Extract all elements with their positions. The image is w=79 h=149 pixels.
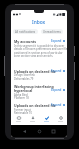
staticText: Workgroup interfacing (14, 84, 54, 89)
staticText: Platform 18 (14, 96, 29, 100)
button[interactable]: Alerts (39, 113, 53, 125)
staticText: Uploads on declared file (14, 103, 56, 108)
button[interactable]: My accounts (11, 38, 67, 60)
staticText: Expand (51, 69, 62, 73)
button[interactable]: Expand (51, 39, 65, 43)
staticText: Inbox (32, 19, 46, 26)
other: Home (38, 130, 41, 133)
staticText: Design Storefink (14, 73, 35, 77)
button[interactable]: Expand (51, 88, 65, 92)
staticText: All notifications (15, 30, 36, 34)
button[interactable]: People (25, 113, 39, 125)
staticText: positioned in section area of particular (14, 51, 63, 55)
button[interactable]: Inbox (11, 18, 67, 27)
button[interactable]: Home (11, 113, 25, 125)
staticText: Unread items (43, 30, 61, 34)
other: Back (23, 130, 26, 133)
staticText: My accounts (14, 39, 36, 44)
staticText: Deliverables 79 (14, 77, 34, 81)
button[interactable]: Uploads on declared file (11, 68, 67, 82)
button[interactable]: Expand (51, 103, 65, 107)
button[interactable]: All notifications (13, 29, 38, 34)
button[interactable]: Workgroup interfacing (11, 84, 67, 102)
button[interactable]: Settings (53, 113, 67, 125)
staticText: zone section view and services. (14, 54, 54, 58)
button[interactable]: Expand (51, 69, 65, 73)
staticText: Expand (51, 39, 62, 43)
staticText: In this segment it is possible to discov… (14, 44, 65, 48)
staticText: Expand (51, 88, 62, 92)
staticText: Retrievable 70 (14, 111, 32, 115)
staticText: Former input (14, 108, 31, 112)
staticText: Alpha Bind (14, 93, 28, 97)
button[interactable]: Unread items (41, 29, 63, 34)
staticText: Uploads on declared file (14, 69, 56, 74)
staticText: hyperlocal (14, 88, 33, 93)
button[interactable]: Uploads on declared file (11, 102, 67, 116)
staticText: details of chosen preferences and user f… (14, 47, 67, 51)
other: Recents (52, 130, 55, 133)
staticText: Expand (51, 103, 62, 107)
